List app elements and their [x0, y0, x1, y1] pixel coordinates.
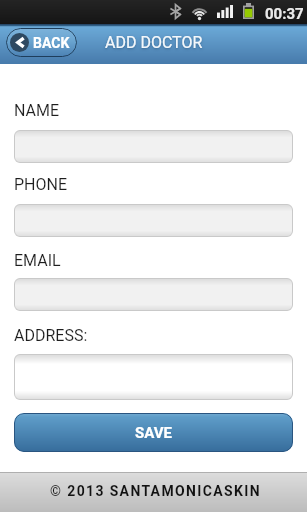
button[interactable] — [14, 204, 293, 237]
staticText: PHONE — [14, 175, 68, 194]
staticText: NAME — [14, 101, 60, 120]
staticText: 00:37 — [265, 5, 304, 23]
button[interactable] — [14, 278, 293, 311]
button[interactable] — [14, 130, 293, 163]
button[interactable]: © 2013 SANTAMONICASKIN — [0, 473, 307, 512]
staticText: BACK — [33, 35, 70, 51]
other: Back — [10, 33, 29, 52]
staticText: © 2013 SANTAMONICASKIN — [50, 483, 261, 499]
button[interactable]: SAVE — [14, 413, 293, 452]
staticText: ADD DOCTOR — [105, 33, 203, 52]
button[interactable]: Back — [6, 28, 77, 57]
staticText: ADDRESS: — [14, 326, 88, 345]
staticText: SAVE — [135, 424, 173, 442]
button[interactable] — [14, 354, 293, 400]
staticText: EMAIL — [14, 251, 61, 270]
